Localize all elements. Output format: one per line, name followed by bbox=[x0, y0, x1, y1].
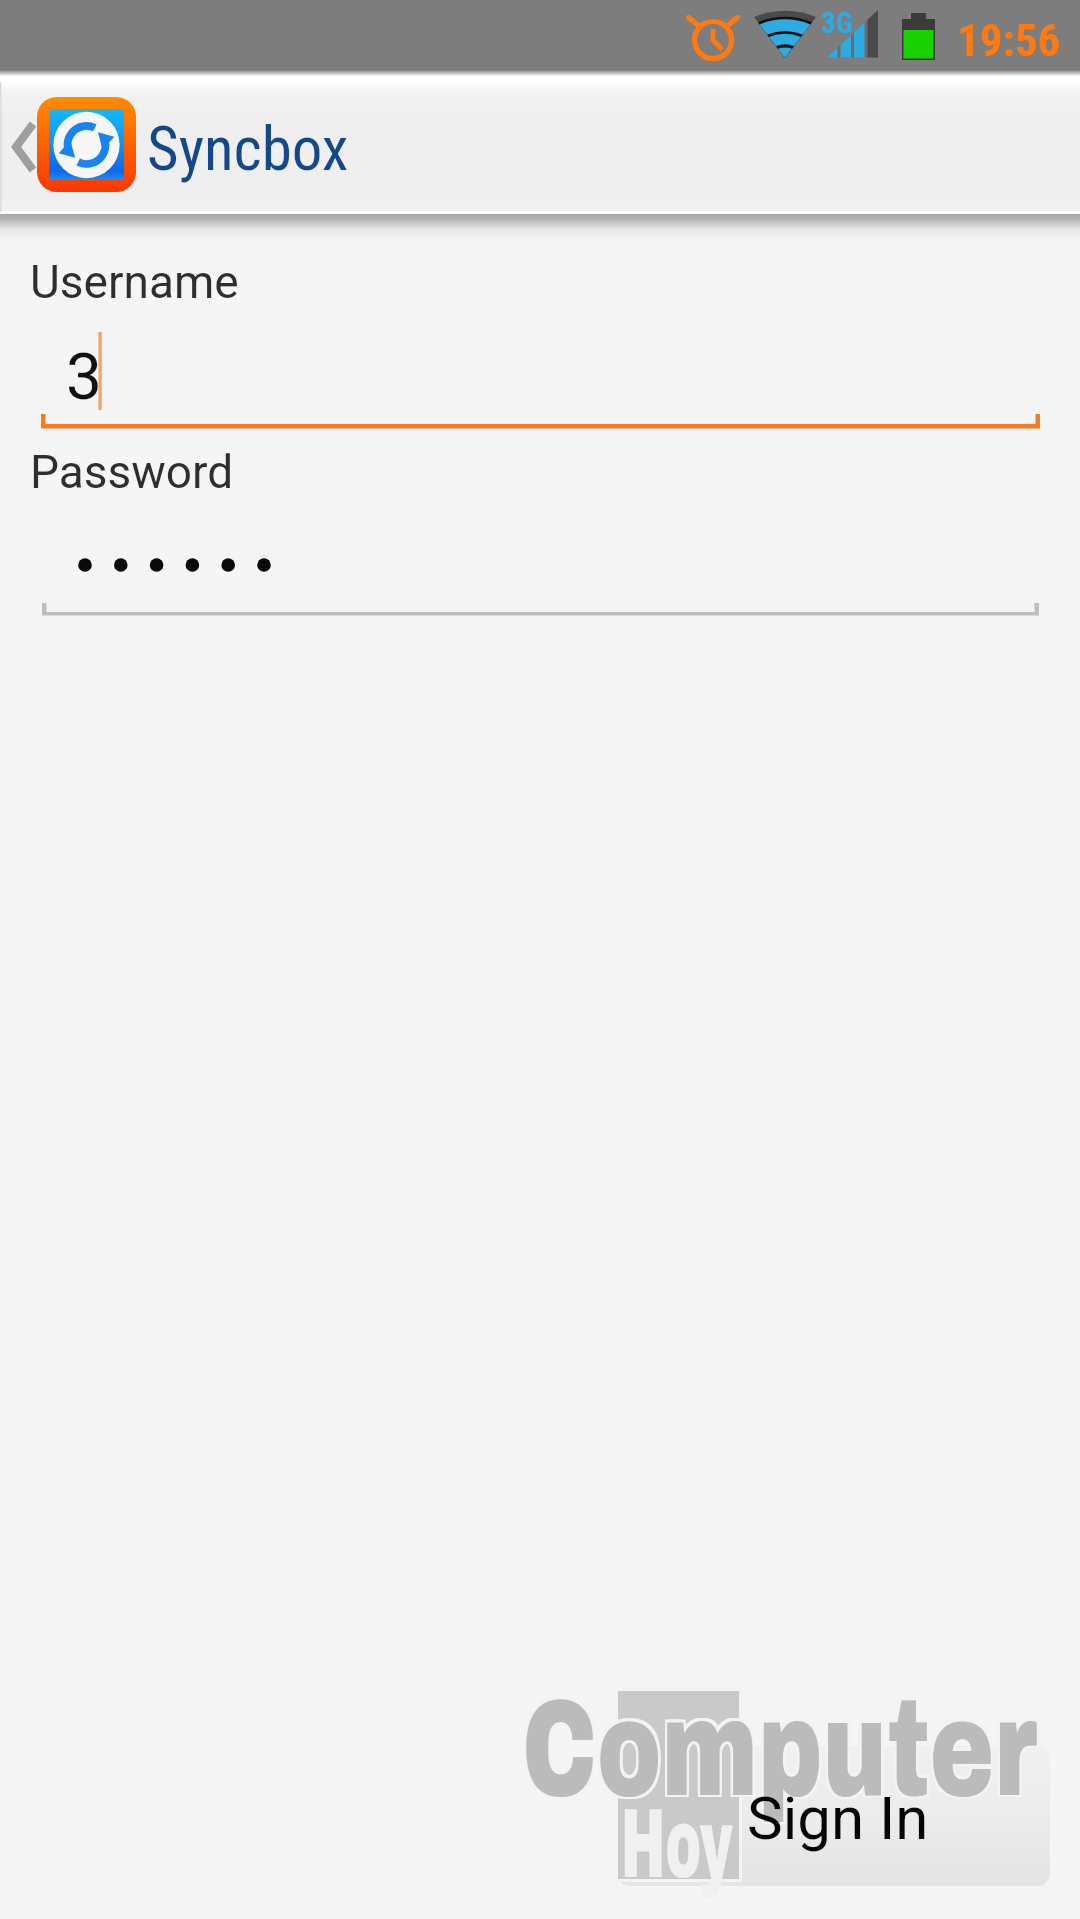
button[interactable]: 3 bbox=[0, 320, 1080, 430]
staticText: Syncbox bbox=[147, 113, 349, 184]
button[interactable] bbox=[0, 510, 1080, 615]
button[interactable] bbox=[617, 1746, 1050, 1886]
staticText: Username bbox=[30, 255, 239, 309]
staticText: 3 bbox=[66, 340, 102, 415]
staticText: Sign In bbox=[747, 1783, 929, 1853]
button[interactable]: Navigate up bbox=[6, 110, 42, 182]
staticText: 19:56 bbox=[957, 14, 1061, 67]
staticText: 3G bbox=[821, 6, 853, 40]
staticText: Password bbox=[30, 445, 234, 499]
